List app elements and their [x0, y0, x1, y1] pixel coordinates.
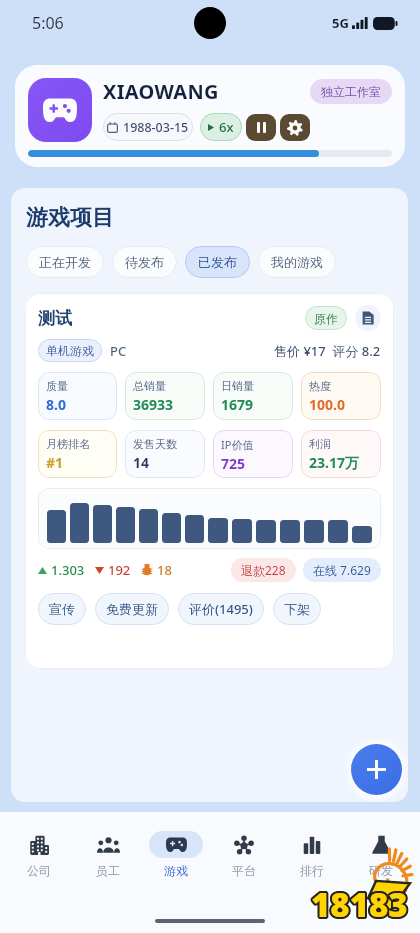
staticText: 18183: [313, 881, 410, 926]
staticText: 18183: [312, 884, 409, 929]
staticText: 我的游戏: [271, 254, 323, 270]
staticText: 23.17万: [309, 453, 359, 472]
staticText: 18183: [313, 882, 410, 927]
staticText: 5:06: [32, 12, 64, 34]
staticText: 6x: [219, 118, 234, 136]
staticText: 平台: [232, 863, 256, 878]
staticText: 利润: [309, 437, 331, 451]
button[interactable]: 待发布: [112, 246, 177, 278]
button[interactable]: Settings: [280, 114, 310, 141]
button[interactable]: Details: [355, 305, 381, 331]
staticText: IP价值: [221, 437, 254, 452]
button[interactable]: 独立工作室: [310, 79, 392, 104]
staticText: 8.0: [46, 395, 66, 414]
staticText: 18183: [312, 881, 409, 926]
staticText: 待发布: [125, 254, 164, 270]
button[interactable]: 正在开发: [26, 246, 104, 278]
button[interactable]: 宣传: [38, 593, 86, 625]
staticText: 在线 7.629: [313, 562, 371, 578]
button[interactable]: 原作: [305, 306, 347, 330]
staticText: 宣传: [49, 601, 75, 617]
button[interactable]: 下架: [273, 593, 321, 625]
button[interactable]: 1988-03-15: [103, 113, 193, 141]
staticText: 18183: [311, 882, 408, 927]
staticText: 1988-03-15: [123, 119, 189, 136]
staticText: 100.0: [309, 395, 345, 414]
staticText: 5G: [332, 14, 349, 32]
staticText: 测试: [38, 308, 72, 329]
staticText: XIAOWANG: [103, 78, 219, 105]
staticText: 18183: [310, 884, 407, 929]
staticText: 单机游戏: [46, 343, 94, 358]
staticText: 下架: [284, 601, 310, 617]
button[interactable]: 平台: [215, 831, 273, 878]
button[interactable]: 我的游戏: [258, 246, 336, 278]
staticText: 退款228: [241, 562, 286, 578]
staticText: 18183: [311, 880, 408, 925]
staticText: 1.303: [51, 561, 85, 579]
staticText: 发售天数: [133, 437, 177, 451]
staticText: 18183: [312, 882, 409, 927]
button[interactable]: 公司: [10, 831, 68, 878]
staticText: 18183: [311, 881, 408, 926]
staticText: 18: [157, 561, 172, 579]
staticText: 游戏: [164, 863, 188, 878]
button[interactable]: 在线 7.629: [303, 558, 381, 582]
staticText: 18183: [311, 882, 408, 927]
staticText: 192: [108, 561, 131, 579]
staticText: 独立工作室: [321, 84, 381, 99]
staticText: 18183: [310, 883, 407, 928]
button[interactable]: 免费更新: [95, 593, 169, 625]
button[interactable]: Add new game: [351, 744, 402, 795]
button[interactable]: 评价(1495): [178, 593, 264, 625]
staticText: 游戏项目: [26, 204, 114, 232]
button[interactable]: 6x: [200, 113, 242, 141]
staticText: 原作: [314, 311, 338, 326]
staticText: 月榜排名: [46, 437, 90, 451]
staticText: 已发布: [198, 254, 237, 270]
staticText: 公司: [27, 863, 51, 878]
staticText: PC: [110, 342, 127, 360]
staticText: 热度: [309, 379, 331, 393]
button[interactable]: 游戏: [147, 831, 205, 878]
staticText: 18183: [310, 882, 407, 927]
staticText: 1679: [221, 395, 254, 414]
staticText: 排行: [300, 863, 324, 878]
button[interactable]: 退款228: [231, 558, 296, 582]
button[interactable]: Pause: [246, 114, 276, 141]
staticText: 总销量: [133, 379, 166, 393]
staticText: 18183: [313, 883, 410, 928]
button[interactable]: 研发: [352, 831, 410, 878]
staticText: 18183: [312, 883, 409, 928]
staticText: 18183: [310, 881, 407, 926]
staticText: 18183: [310, 880, 407, 925]
staticText: 18183: [311, 883, 408, 928]
staticText: 18183: [309, 882, 406, 927]
staticText: 评价(1495): [189, 600, 253, 618]
staticText: 18183: [311, 884, 408, 929]
staticText: 员工: [96, 863, 120, 878]
staticText: 18183: [309, 881, 406, 926]
staticText: 免费更新: [106, 601, 158, 617]
staticText: 日销量: [221, 379, 254, 393]
button[interactable]: 单机游戏: [38, 339, 102, 362]
button[interactable]: 已发布: [185, 246, 250, 278]
button[interactable]: 员工: [79, 831, 137, 878]
staticText: 质量: [46, 379, 68, 393]
staticText: 正在开发: [39, 254, 91, 270]
staticText: 售价 ¥17 评分 8.2: [274, 342, 381, 360]
staticText: #1: [46, 453, 64, 472]
staticText: 14: [133, 453, 150, 472]
staticText: 18183: [312, 880, 409, 925]
staticText: 36933: [133, 395, 174, 414]
button[interactable]: 排行: [283, 831, 341, 878]
staticText: 18183: [309, 883, 406, 928]
staticText: 研发: [369, 863, 393, 878]
staticText: 725: [221, 454, 246, 473]
